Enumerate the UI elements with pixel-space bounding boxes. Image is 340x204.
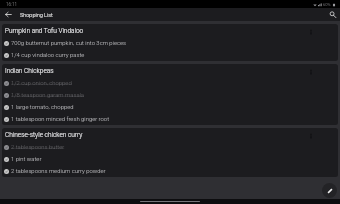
staticText: 1/2 cup onion, chopped bbox=[11, 80, 72, 87]
button[interactable]: Search bbox=[327, 8, 337, 21]
button[interactable]: Indian Chickpeas bbox=[2, 64, 338, 125]
staticText: 700g butternut pumpkin, cut into 3cm pie… bbox=[11, 40, 127, 47]
button[interactable]: 1 tablespoon minced fresh ginger root bbox=[4, 113, 338, 125]
staticText: Pumpkin and Tofu Vindaloo bbox=[5, 27, 306, 35]
button[interactable]: 2 tablespoons medium curry powder bbox=[4, 165, 338, 177]
staticText: 16:11 bbox=[6, 2, 18, 7]
staticText: 2 tablespoons medium curry powder bbox=[11, 168, 106, 175]
staticText: 2 tablespoons butter bbox=[11, 144, 65, 151]
staticText: 1/4 cup vindaloo curry paste bbox=[11, 52, 85, 59]
button[interactable]: Edit list bbox=[322, 183, 337, 198]
button[interactable]: Chinese-style chicken curry bbox=[2, 128, 338, 177]
staticText: Chinese-style chicken curry bbox=[5, 131, 306, 139]
button[interactable]: 1/4 cup vindaloo curry paste bbox=[4, 49, 338, 61]
button[interactable]: Pumpkin and Tofu Vindaloo bbox=[2, 24, 338, 61]
staticText: 60% bbox=[323, 2, 331, 7]
staticText: 1/8 teaspoon garam masala bbox=[11, 92, 85, 99]
button[interactable]: 1 pint water bbox=[4, 153, 338, 165]
button[interactable]: 1 large tomato, chopped bbox=[4, 101, 338, 113]
staticText: 1 large tomato, chopped bbox=[11, 104, 74, 111]
button[interactable]: 1/2 cup onion, chopped bbox=[4, 77, 338, 89]
staticText: Shopping List bbox=[20, 12, 53, 18]
button[interactable]: 2 tablespoons butter bbox=[4, 141, 338, 153]
button[interactable]: Back bbox=[3, 8, 13, 21]
staticText: 1 tablespoon minced fresh ginger root bbox=[11, 116, 110, 123]
button[interactable]: 1/8 teaspoon garam masala bbox=[4, 89, 338, 101]
staticText: Indian Chickpeas bbox=[5, 67, 306, 75]
staticText: 1 pint water bbox=[11, 156, 42, 163]
button[interactable]: 700g butternut pumpkin, cut into 3cm pie… bbox=[4, 37, 338, 49]
